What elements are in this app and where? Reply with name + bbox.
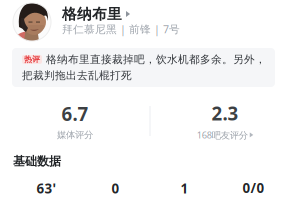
- staticText: 把裁判拖出去乱棍打死: [22, 69, 132, 82]
- button[interactable]: 6.7: [0, 101, 150, 141]
- staticText: 0/0: [242, 179, 264, 197]
- staticText: 168吧友评分: [197, 129, 248, 141]
- staticText: 2.3: [211, 101, 238, 126]
- staticText: 基础数据: [13, 154, 61, 169]
- staticText: 格纳布里: [62, 5, 122, 23]
- staticText: 格纳布里直接裁掉吧，饮水机都多余。另外，: [46, 53, 266, 66]
- button[interactable]: 热评: [12, 48, 275, 87]
- staticText: 63': [36, 179, 56, 197]
- staticText: 拜仁慕尼黑 | 前锋 | 7号: [62, 22, 180, 36]
- staticText: 6.7: [61, 101, 88, 126]
- button[interactable]: 格纳布里: [62, 6, 182, 22]
- staticText: 1: [180, 179, 188, 197]
- staticText: 热评: [24, 54, 40, 64]
- button[interactable]: 2.3: [150, 101, 300, 141]
- staticText: 0: [111, 179, 119, 197]
- staticText: 媒体评分: [57, 129, 93, 141]
